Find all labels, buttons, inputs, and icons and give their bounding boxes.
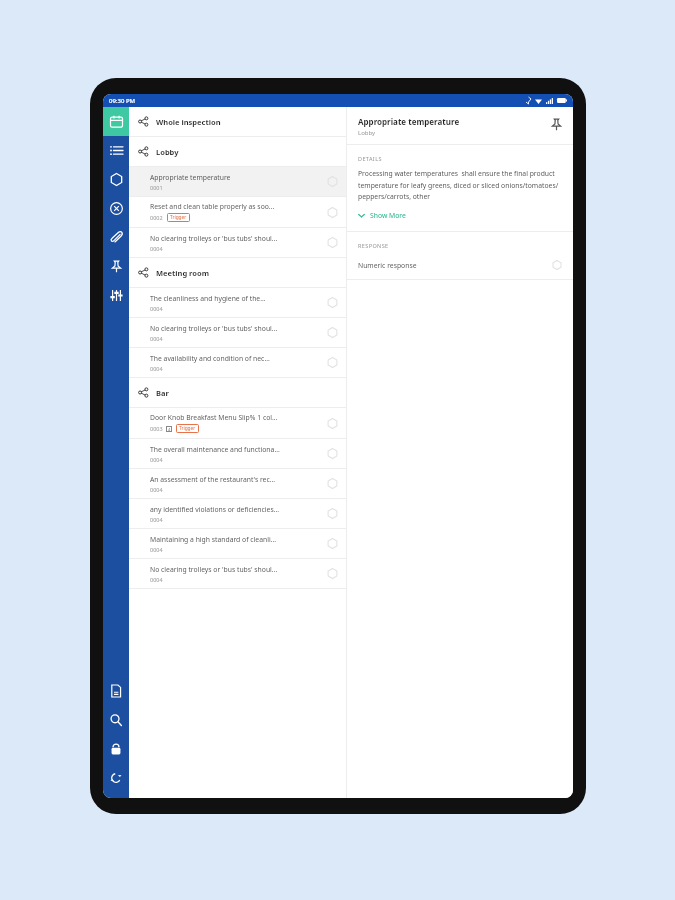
staticText: Processing water temperatures shall ensu… [358,169,562,201]
button[interactable]: Calendar [103,107,129,136]
button[interactable]: Lock [103,734,129,763]
button[interactable]: The overall maintenance and functiona... [129,439,346,468]
staticText: 0004 [150,486,163,493]
button[interactable]: Numeric response [358,260,562,270]
staticText: Whole inspection [156,117,221,127]
staticText: Trigger [170,214,187,221]
button[interactable]: Show More [358,209,406,222]
staticText: The overall maintenance and functiona... [150,445,280,454]
staticText: No clearing trolleys or 'bus tubs' shoul… [150,565,278,574]
staticText: An assessment of the restaurant's rec... [150,475,276,484]
staticText: any identified violations or deficiencie… [150,505,280,514]
staticText: 0004 [150,245,163,252]
staticText: Maintaining a high standard of cleanli..… [150,535,277,544]
staticText: 4 [168,427,171,432]
staticText: 0004 [150,576,163,583]
button[interactable]: Attachments [103,223,129,252]
staticText: Numeric response [358,261,552,270]
staticText: DETAILS [358,155,382,162]
button[interactable]: No clearing trolleys or 'bus tubs' shoul… [129,228,346,257]
button[interactable]: Issues [103,194,129,223]
staticText: 09:30 PM [109,97,136,105]
button[interactable]: Appropriate temperature [129,167,346,196]
staticText: The cleanliness and hygiene of the... [150,294,266,303]
button[interactable]: any identified violations or deficiencie… [129,499,346,528]
staticText: Appropriate temperature [358,116,460,127]
button[interactable]: Reset and clean table properly as soo... [129,197,346,227]
staticText: 0004 [150,546,163,553]
button[interactable]: Meeting room [129,258,346,287]
staticText: No clearing trolleys or 'bus tubs' shoul… [150,324,278,333]
staticText: 0003 [150,425,163,432]
button[interactable]: No clearing trolleys or 'bus tubs' shoul… [129,559,346,588]
button[interactable]: The cleanliness and hygiene of the... [129,288,346,317]
staticText: Trigger [179,425,196,432]
staticText: 0004 [150,516,163,523]
button[interactable]: Shapes [103,165,129,194]
staticText: 0002 [150,214,163,221]
button[interactable]: Door Knob Breakfast Menu Slip% 1 col... [129,408,346,438]
button[interactable]: Search [103,705,129,734]
staticText: 0004 [150,335,163,342]
button[interactable]: Whole inspection [129,107,346,136]
staticText: Show More [370,211,406,220]
staticText: The availability and condition of nec... [150,354,270,363]
staticText: Appropriate temperature [150,173,231,182]
button[interactable]: An assessment of the restaurant's rec... [129,469,346,498]
button[interactable]: Pin [548,116,564,132]
staticText: No clearing trolleys or 'bus tubs' shoul… [150,234,278,243]
button[interactable]: Filters [103,281,129,310]
button[interactable]: Maintaining a high standard of cleanli..… [129,529,346,558]
staticText: Lobby [156,147,179,157]
button[interactable]: Bar [129,378,346,407]
staticText: 0004 [150,456,163,463]
button[interactable]: Lobby [129,137,346,166]
staticText: Bar [156,388,169,398]
button[interactable]: Documents [103,676,129,705]
staticText: Lobby [358,129,376,137]
button[interactable]: Sync [103,763,129,792]
staticText: 0004 [150,305,163,312]
button[interactable]: No clearing trolleys or 'bus tubs' shoul… [129,318,346,347]
staticText: Reset and clean table properly as soo... [150,202,275,211]
staticText: RESPONSE [358,242,389,249]
button[interactable]: Pinned [103,252,129,281]
staticText: 0001 [150,184,163,191]
staticText: Door Knob Breakfast Menu Slip% 1 col... [150,413,278,422]
staticText: Meeting room [156,268,209,278]
button[interactable]: List [103,136,129,165]
button[interactable]: The availability and condition of nec... [129,348,346,377]
staticText: 0004 [150,365,163,372]
